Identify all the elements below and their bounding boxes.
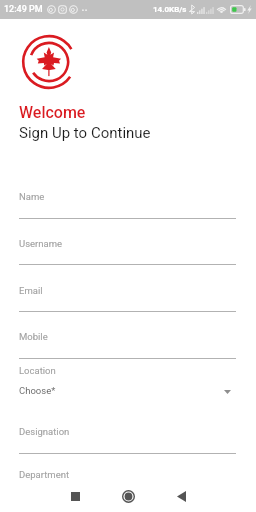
- button[interactable]: Home: [112, 480, 144, 512]
- button[interactable]: Recent apps: [59, 480, 91, 512]
- button[interactable]: [0, 322, 256, 360]
- button[interactable]: [0, 417, 256, 455]
- staticText: Department: [19, 469, 70, 480]
- staticText: 14.0KB/s: [153, 5, 187, 14]
- staticText: Username: [19, 238, 63, 249]
- staticText: Choose*: [19, 385, 56, 396]
- button[interactable]: [0, 276, 256, 313]
- staticText: Welcome: [19, 103, 86, 122]
- button[interactable]: [0, 460, 256, 502]
- staticText: Location: [19, 365, 56, 376]
- staticText: 12:49 PM: [4, 4, 43, 15]
- button[interactable]: Choose*: [19, 379, 236, 401]
- button[interactable]: Back: [165, 480, 197, 512]
- staticText: Mobile: [19, 331, 48, 342]
- button[interactable]: [0, 229, 256, 266]
- staticText: Email: [19, 285, 43, 296]
- button[interactable]: [0, 182, 256, 220]
- staticText: Name: [19, 191, 45, 202]
- staticText: Designation: [19, 426, 70, 437]
- staticText: Sign Up to Continue: [19, 124, 151, 142]
